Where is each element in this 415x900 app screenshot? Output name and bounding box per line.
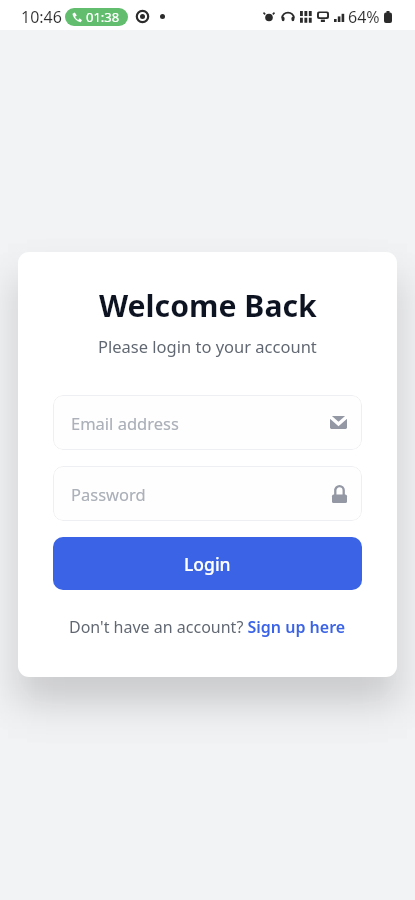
staticText: 01:38 <box>86 8 120 26</box>
button[interactable]: Don't have an account? Sign up here <box>69 616 346 638</box>
button[interactable]: Login <box>53 537 362 590</box>
staticText: Email address <box>71 412 179 434</box>
staticText: Please login to your account <box>98 335 317 357</box>
button[interactable]: Email address <box>53 395 362 450</box>
staticText: Don't have an account? Sign up here <box>69 616 346 638</box>
staticText: Login <box>184 552 231 576</box>
staticText: Welcome Back <box>99 285 317 326</box>
button[interactable]: Password <box>53 466 362 521</box>
staticText: 64% <box>348 6 380 28</box>
staticText: Password <box>71 483 146 505</box>
staticText: 10:46 <box>21 6 62 28</box>
